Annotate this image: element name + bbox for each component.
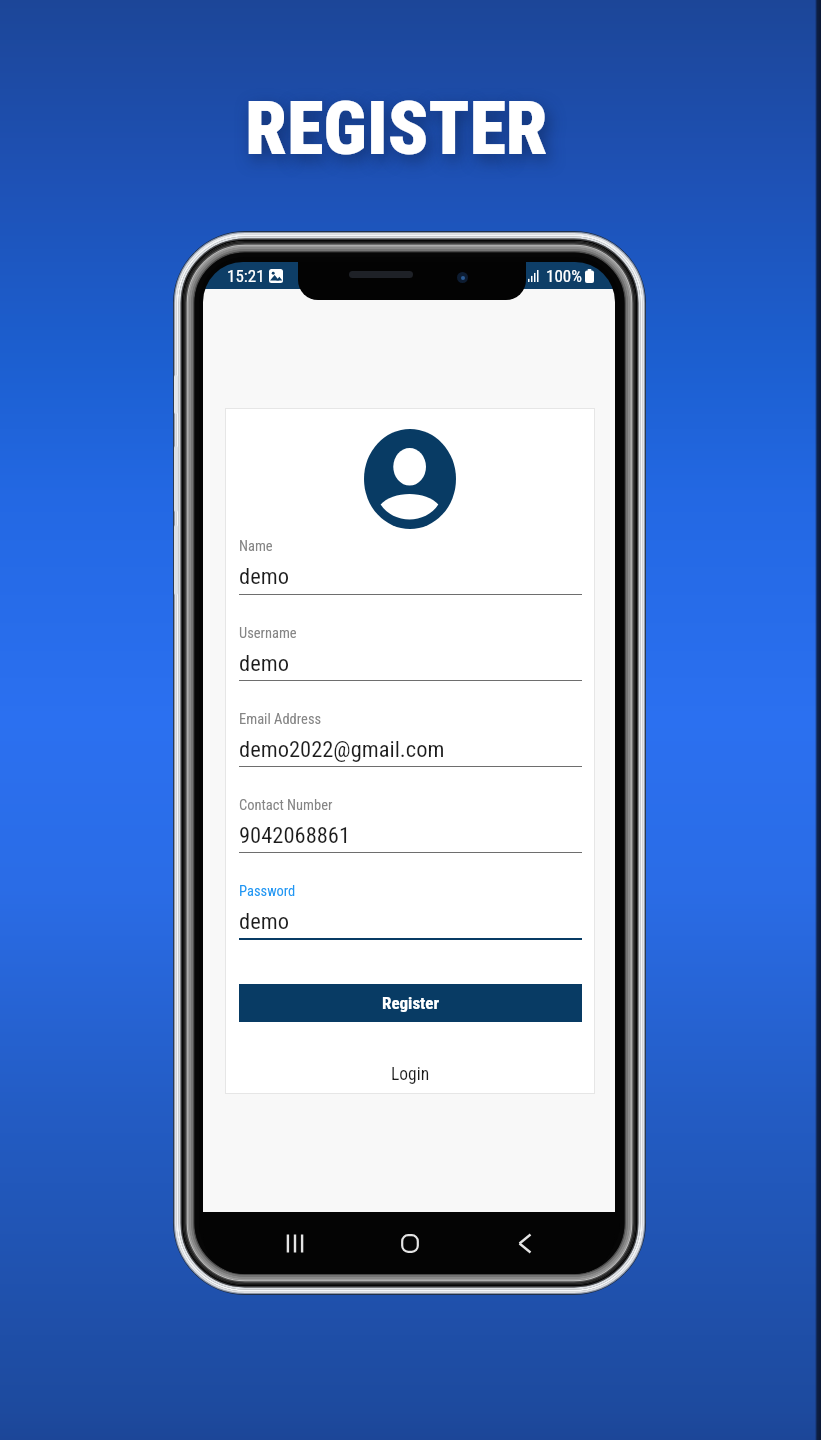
button[interactable]: Recent apps: [283, 1220, 307, 1266]
staticText: Contact Number: [239, 797, 333, 814]
staticText: Login: [391, 1064, 430, 1085]
staticText: Password: [239, 883, 296, 900]
button[interactable]: Home: [398, 1220, 422, 1266]
staticText: 15:21: [227, 266, 265, 286]
staticText: demo: [239, 650, 289, 676]
other: Profile photo: [364, 429, 456, 529]
staticText: demo: [239, 908, 289, 934]
staticText: 9042068861: [239, 822, 351, 848]
button[interactable]: Register: [239, 984, 582, 1022]
staticText: demo: [239, 563, 289, 589]
staticText: Email Address: [239, 711, 322, 728]
button[interactable]: Back: [513, 1220, 537, 1266]
staticText: Username: [239, 625, 297, 642]
staticText: demo2022@gmail.com: [239, 736, 445, 762]
staticText: REGISTER: [0, 85, 807, 172]
staticText: Register: [382, 993, 440, 1013]
button[interactable]: Login: [225, 1055, 595, 1093]
staticText: 100%: [546, 266, 582, 286]
staticText: Name: [239, 538, 273, 555]
